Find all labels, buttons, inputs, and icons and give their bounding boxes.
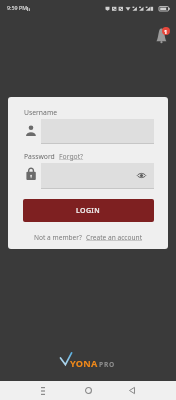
- button[interactable]: Recent apps: [29, 381, 57, 400]
- staticText: PRO: [99, 360, 116, 369]
- button[interactable]: Back: [118, 381, 146, 400]
- staticText: LOGIN: [76, 206, 101, 216]
- staticText: 9:59 PM: [7, 4, 28, 11]
- button[interactable]: Notifications: [152, 24, 172, 44]
- staticText: YONA: [70, 357, 98, 370]
- staticText: 1: [164, 28, 168, 35]
- button[interactable]: Show password: [136, 170, 146, 180]
- button[interactable]: Home: [74, 381, 102, 400]
- staticText: Not a member?: [34, 233, 82, 242]
- staticText: Username: [24, 108, 58, 117]
- button[interactable]: [41, 163, 154, 188]
- button[interactable]: Create an account: [86, 233, 143, 242]
- staticText: Password: [24, 152, 55, 161]
- button[interactable]: LOGIN: [23, 199, 154, 222]
- button[interactable]: Forgot?: [59, 152, 84, 161]
